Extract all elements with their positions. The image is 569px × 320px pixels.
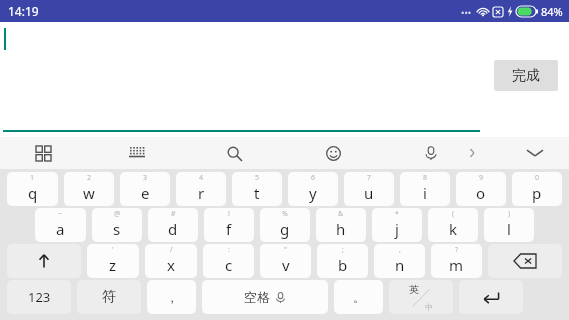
staticText: y (309, 183, 317, 203)
button[interactable]: ~ (35, 208, 86, 242)
staticText: x (167, 255, 175, 275)
staticText: 4 (199, 173, 204, 183)
staticText: , (399, 245, 401, 255)
staticText: ? (455, 245, 459, 255)
staticText: 3 (143, 173, 148, 183)
staticText: 0 (535, 173, 540, 183)
button[interactable]: ( (428, 208, 478, 242)
button[interactable]: : (203, 244, 254, 278)
staticText: 14:19 (8, 3, 39, 19)
staticText: f (226, 219, 232, 239)
staticText: b (338, 255, 348, 275)
staticText: m (449, 255, 464, 275)
button[interactable]: Hide keyboard (520, 138, 550, 168)
staticText: % (282, 209, 288, 219)
button[interactable]: Language (389, 280, 453, 314)
button[interactable]: 6 (288, 172, 338, 206)
staticText: ~ (58, 209, 63, 219)
button[interactable]: / (145, 244, 197, 278)
button[interactable]: Enter (459, 280, 523, 314)
button[interactable]: 1 (7, 172, 58, 206)
staticText: 符 (102, 288, 116, 306)
staticText: & (338, 209, 344, 219)
staticText: p (532, 183, 542, 203)
staticText: 2 (87, 173, 92, 183)
button[interactable]: ' (87, 244, 139, 278)
button[interactable]: % (260, 208, 310, 242)
staticText: i (423, 183, 427, 203)
staticText: k (449, 219, 458, 239)
button[interactable]: 2 (64, 172, 114, 206)
button[interactable]: , (374, 244, 425, 278)
button[interactable]: Shift (7, 244, 81, 278)
staticText: 8 (423, 173, 428, 183)
staticText: h (336, 219, 346, 239)
staticText: 7 (367, 173, 372, 183)
button[interactable]: 123 (7, 280, 71, 314)
staticText: l (507, 219, 511, 239)
staticText: d (168, 219, 178, 239)
button[interactable]: 。 (334, 280, 383, 314)
staticText: 9 (479, 173, 484, 183)
staticText: a (56, 219, 65, 239)
button[interactable]: Voice input (416, 138, 446, 168)
staticText: 空格 (244, 289, 270, 305)
staticText: t (254, 183, 260, 203)
button[interactable]: @ (92, 208, 142, 242)
staticText: u (364, 183, 374, 203)
button[interactable]: Keyboard (122, 138, 152, 168)
button[interactable]: 0 (512, 172, 562, 206)
staticText: g (280, 219, 290, 239)
staticText: 1 (30, 173, 35, 183)
button[interactable]: 符 (77, 280, 141, 314)
staticText: 84% (541, 4, 563, 19)
staticText: j (395, 219, 399, 239)
button[interactable]: Search (219, 138, 249, 168)
button[interactable]: * (372, 208, 422, 242)
button[interactable]: 空格 (202, 280, 328, 314)
staticText: 123 (28, 288, 51, 306)
staticText: c (225, 255, 233, 275)
staticText: @ (114, 209, 121, 219)
staticText: r (198, 183, 205, 203)
button[interactable]: # (148, 208, 198, 242)
staticText: z (109, 255, 117, 275)
staticText: v (282, 255, 290, 275)
staticText: ! (228, 209, 230, 219)
staticText: 完成 (512, 67, 540, 85)
button[interactable]: ; (317, 244, 368, 278)
button[interactable]: More (461, 142, 483, 164)
button[interactable]: Emoji (318, 138, 348, 168)
staticText: / (170, 245, 173, 255)
button[interactable]: & (316, 208, 366, 242)
staticText: ( (452, 209, 455, 219)
staticText: q (28, 183, 38, 203)
staticText: : (228, 245, 230, 255)
staticText: ' (112, 245, 114, 255)
button[interactable]: 7 (344, 172, 394, 206)
button[interactable]: Backspace (488, 244, 562, 278)
button[interactable]: 9 (456, 172, 506, 206)
staticText: n (395, 255, 405, 275)
button[interactable]: 5 (232, 172, 282, 206)
button[interactable]: 3 (120, 172, 170, 206)
staticText: # (171, 209, 176, 219)
button[interactable]: 完成 (494, 60, 558, 91)
staticText: e (141, 183, 150, 203)
staticText: 中 (425, 302, 433, 312)
button[interactable]: ) (484, 208, 534, 242)
staticText: ) (508, 209, 511, 219)
staticText: 5 (255, 173, 260, 183)
staticText: " (284, 245, 287, 255)
button[interactable]: Menu (28, 138, 58, 168)
button[interactable]: 8 (400, 172, 450, 206)
button[interactable]: ， (147, 280, 196, 314)
staticText: w (83, 183, 95, 203)
button[interactable]: " (260, 244, 311, 278)
staticText: 。 (353, 290, 365, 305)
button[interactable]: ? (431, 244, 482, 278)
button[interactable]: 4 (176, 172, 226, 206)
staticText: 英 (409, 283, 419, 296)
staticText: o (476, 183, 486, 203)
button[interactable]: ! (204, 208, 254, 242)
